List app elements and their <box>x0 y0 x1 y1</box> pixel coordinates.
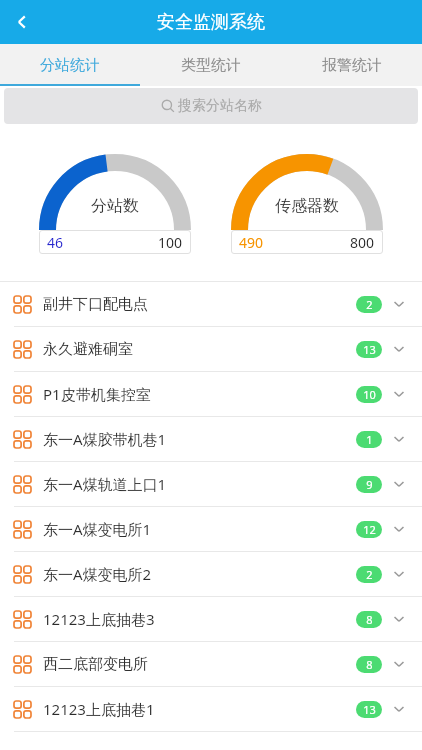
button[interactable]: Expand <box>388 698 410 720</box>
staticText: 分站统计 <box>40 56 100 75</box>
staticText: 13 <box>363 702 376 717</box>
staticText: 传感器数 <box>275 196 339 216</box>
button[interactable]: Expand <box>388 608 410 630</box>
button[interactable]: Expand <box>388 518 410 540</box>
staticText: 1 <box>366 432 373 447</box>
button[interactable]: Expand <box>388 473 410 495</box>
staticText: 2 <box>366 297 373 312</box>
staticText: 2 <box>366 567 373 582</box>
staticText: 东一A煤变电所2 <box>43 564 356 584</box>
staticText: 12123上底抽巷3 <box>43 609 356 629</box>
button[interactable]: Expand <box>388 383 410 405</box>
button[interactable]: 东一A煤轨道上口1 <box>0 462 422 506</box>
staticText: 10 <box>363 387 376 402</box>
staticText: P1皮带机集控室 <box>43 384 356 404</box>
button[interactable]: P1皮带机集控室 <box>0 372 422 416</box>
staticText: 搜索分站名称 <box>178 97 262 115</box>
button[interactable]: 东一A煤胶带机巷1 <box>0 417 422 461</box>
button[interactable]: 12123上底抽巷3 <box>0 597 422 641</box>
staticText: 13 <box>363 342 376 357</box>
button[interactable]: Expand <box>388 653 410 675</box>
staticText: 12123上底抽巷1 <box>43 699 356 719</box>
staticText: 800 <box>350 233 375 252</box>
button[interactable]: Expand <box>388 338 410 360</box>
button[interactable]: 东一A煤变电所2 <box>0 552 422 596</box>
staticText: 东一A煤变电所1 <box>43 519 356 539</box>
staticText: 12 <box>363 522 376 537</box>
button[interactable]: Back <box>0 0 44 44</box>
staticText: 副井下口配电点 <box>43 295 356 314</box>
button[interactable]: 搜索分站名称 <box>4 88 418 124</box>
button[interactable]: 西二底部变电所 <box>0 642 422 686</box>
staticText: 类型统计 <box>181 56 241 75</box>
button[interactable]: Expand <box>388 293 410 315</box>
staticText: 46 <box>47 233 64 252</box>
button[interactable]: 报警统计 <box>281 44 422 86</box>
button[interactable]: Expand <box>388 428 410 450</box>
button[interactable]: Expand <box>388 563 410 585</box>
staticText: 西二底部变电所 <box>43 655 356 674</box>
button[interactable]: 副井下口配电点 <box>0 282 422 326</box>
button[interactable]: 分站统计 <box>0 44 140 86</box>
staticText: 东一A煤轨道上口1 <box>43 474 356 494</box>
staticText: 8 <box>366 657 373 672</box>
button[interactable]: 东一A煤变电所1 <box>0 507 422 551</box>
staticText: 9 <box>366 477 373 492</box>
staticText: 100 <box>158 233 183 252</box>
staticText: 报警统计 <box>322 56 382 75</box>
staticText: 东一A煤胶带机巷1 <box>43 429 356 449</box>
staticText: 490 <box>239 233 264 252</box>
staticText: 永久避难硐室 <box>43 340 356 359</box>
staticText: 8 <box>366 612 373 627</box>
staticText: 分站数 <box>91 196 139 216</box>
button[interactable]: 12123上底抽巷1 <box>0 687 422 731</box>
button[interactable]: 类型统计 <box>140 44 281 86</box>
button[interactable]: 永久避难硐室 <box>0 327 422 371</box>
staticText: 安全监测系统 <box>157 11 265 34</box>
